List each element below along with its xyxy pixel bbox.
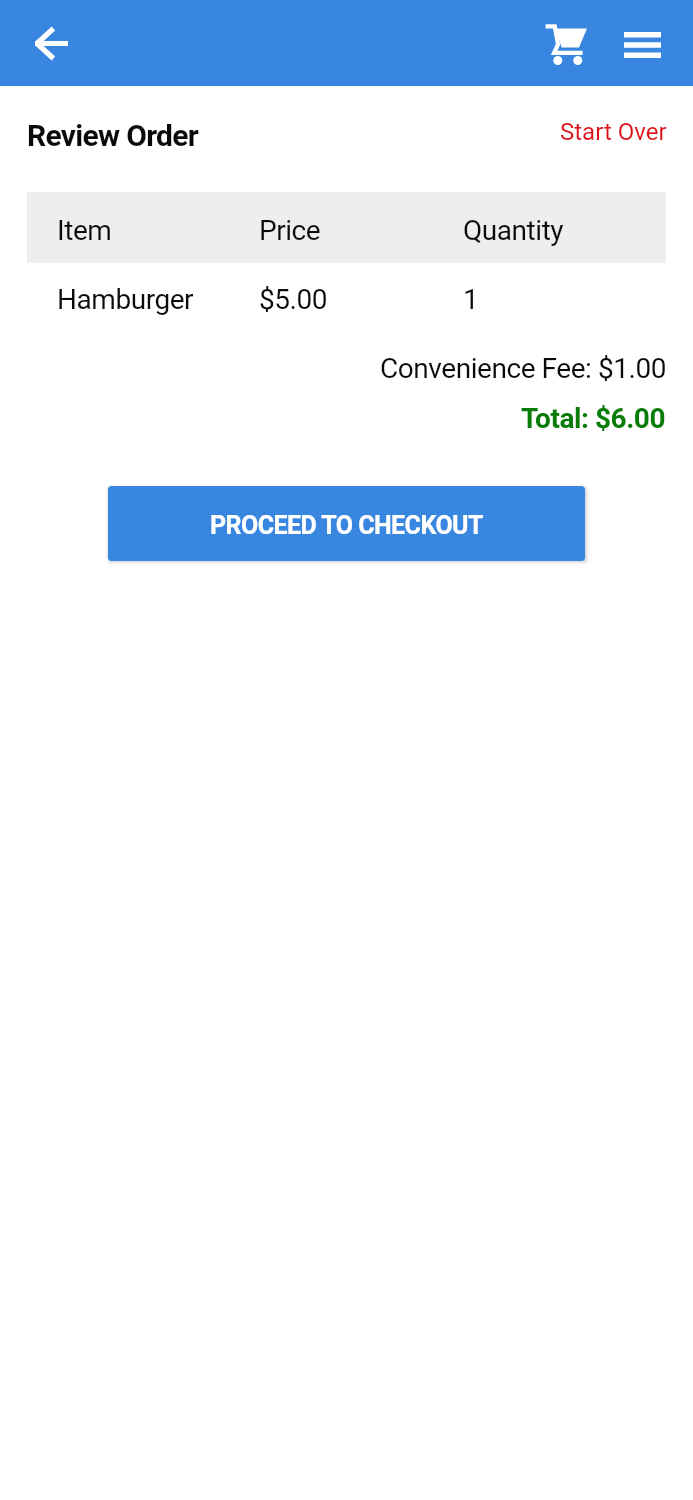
staticText: Hamburger: [57, 283, 194, 316]
button[interactable]: Start Over: [547, 106, 679, 152]
staticText: PROCEED TO CHECKOUT: [210, 511, 483, 540]
staticText: 1: [463, 283, 479, 316]
button[interactable]: PROCEED TO CHECKOUT: [108, 486, 585, 561]
staticText: $5.00: [259, 283, 328, 316]
staticText: Convenience Fee: $1.00: [380, 352, 666, 385]
staticText: Price: [259, 214, 321, 247]
staticText: Start Over: [560, 118, 667, 146]
staticText: Item: [57, 214, 112, 247]
staticText: Review Order: [27, 118, 199, 153]
staticText: Quantity: [463, 214, 564, 247]
button[interactable]: Back: [3, 0, 99, 86]
button[interactable]: Menu: [600, 0, 686, 86]
button[interactable]: Shopping cart: [522, 0, 610, 86]
staticText: Total: $6.00: [521, 402, 666, 435]
